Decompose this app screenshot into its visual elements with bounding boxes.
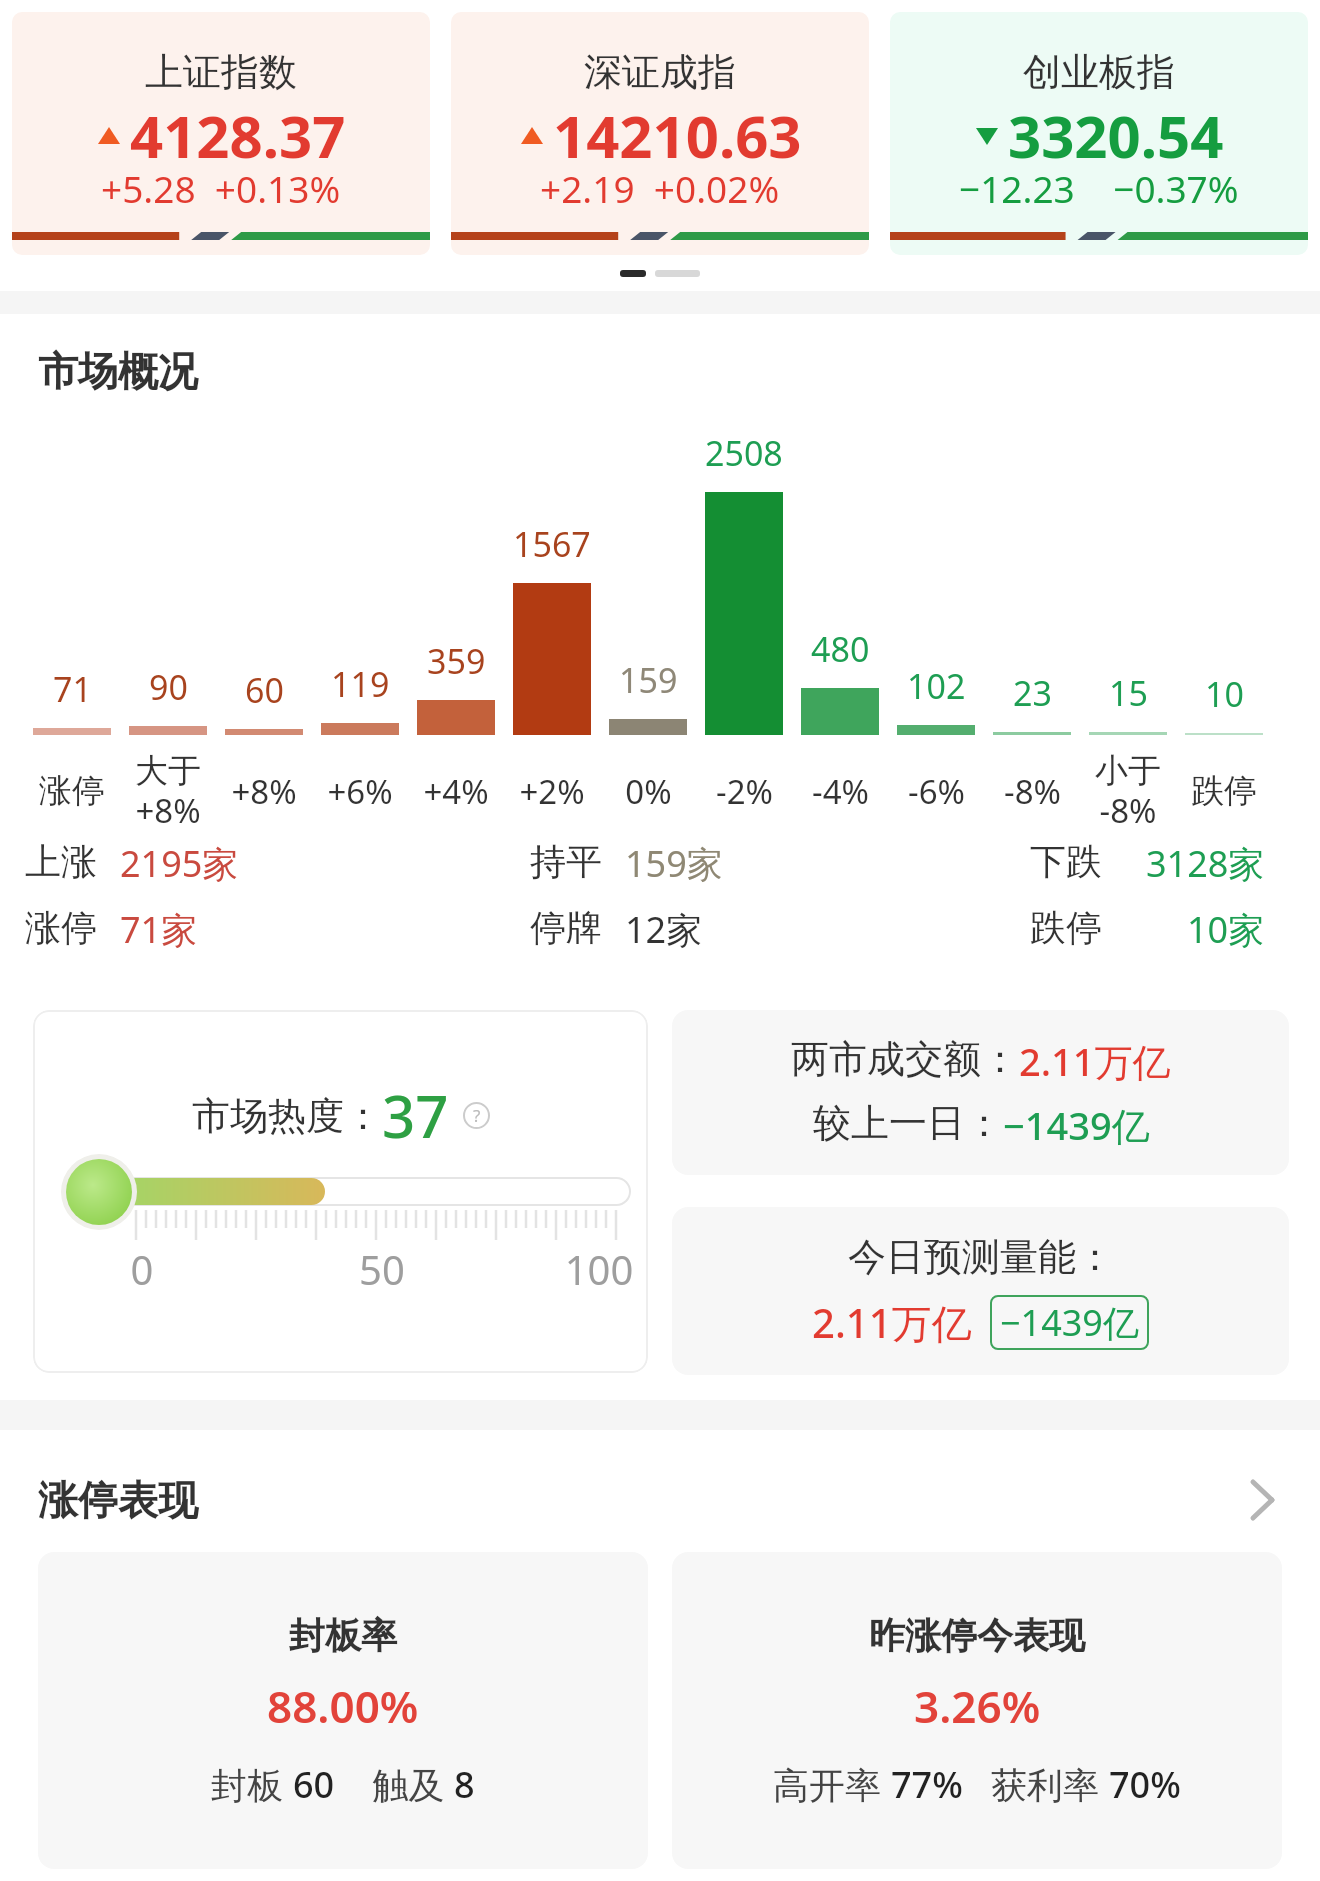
staticText: 3320.54 (1008, 96, 1224, 175)
staticText: 50 (352, 1242, 412, 1296)
staticText: 跌停 (1030, 905, 1102, 950)
staticText: 10 (1205, 671, 1244, 717)
staticText: +5.28 +0.13% (101, 163, 341, 213)
staticText: 23 (1013, 670, 1052, 716)
staticText: +6% (327, 769, 393, 814)
staticText: 2508 (705, 430, 783, 476)
staticText: −12.23 −0.37% (959, 163, 1239, 213)
button[interactable]: 创业板指 (890, 12, 1308, 255)
staticText: 封板 (211, 1760, 293, 1809)
staticText: 71 (53, 666, 92, 712)
staticText: 119 (331, 661, 390, 707)
staticText: ? (473, 1104, 481, 1127)
staticText: 0 (122, 1242, 162, 1296)
staticText: 70% (1109, 1760, 1181, 1809)
button[interactable]: 涨停表现 (0, 1475, 1320, 1525)
staticText: 市场热度： (192, 1092, 382, 1140)
staticText: 持平 (530, 839, 602, 884)
staticText: 涨停 (25, 905, 97, 950)
staticText: 359 (427, 638, 486, 684)
staticText: 15 (1109, 670, 1148, 716)
staticText: 71家 (120, 905, 198, 954)
staticText: +2.19 +0.02% (540, 163, 780, 213)
staticText: 涨停表现 (38, 1475, 198, 1525)
staticText: 102 (907, 663, 966, 709)
staticText: 触及 (335, 1760, 454, 1809)
button[interactable]: 昨涨停今表现 (672, 1552, 1282, 1869)
staticText: 3128家 (1146, 839, 1265, 888)
staticText: 创业板指 (1023, 48, 1175, 96)
button[interactable]: 两市成交额： (672, 1010, 1289, 1175)
staticText: −1439亿 (1000, 1298, 1139, 1347)
staticText: 停牌 (530, 905, 602, 950)
staticText: -6% (908, 769, 965, 814)
staticText: 37 (382, 1076, 449, 1155)
staticText: 市场概况 (38, 346, 198, 396)
staticText: 大于 +8% (135, 750, 201, 833)
staticText: 高开率 (773, 1760, 891, 1809)
staticText: 下跌 (1030, 839, 1102, 884)
staticText: 昨涨停今表现 (869, 1613, 1085, 1658)
staticText: 获利率 (963, 1760, 1109, 1809)
staticText: 深证成指 (584, 48, 736, 96)
staticText: 88.00% (267, 1676, 419, 1736)
button[interactable]: 深证成指 (451, 12, 869, 255)
staticText: 小于 -8% (1095, 750, 1161, 833)
staticText: 4128.37 (130, 96, 346, 175)
staticText: 2195家 (120, 839, 239, 888)
staticText: 159家 (625, 839, 723, 888)
button[interactable]: 封板率 (38, 1552, 648, 1869)
staticText: 10家 (1187, 905, 1265, 954)
staticText: 100 (554, 1242, 644, 1296)
button[interactable]: 今日预测量能： (672, 1207, 1289, 1375)
staticText: 2.11万亿 (812, 1295, 972, 1350)
staticText: 159 (619, 657, 678, 703)
staticText: 8 (454, 1760, 475, 1809)
staticText: 跌停 (1191, 770, 1257, 812)
staticText: 封板率 (289, 1613, 397, 1658)
staticText: +2% (519, 769, 585, 814)
staticText: +4% (423, 769, 489, 814)
staticText: 3.26% (914, 1676, 1041, 1736)
staticText: 1567 (513, 521, 591, 567)
staticText: 60 (245, 667, 284, 713)
staticText: 77% (891, 1760, 963, 1809)
staticText: 90 (149, 664, 188, 710)
staticText: −1439亿 (1003, 1099, 1150, 1151)
staticText: -8% (1004, 769, 1061, 814)
staticText: +8% (231, 769, 297, 814)
staticText: 涨停 (39, 770, 105, 812)
staticText: 480 (811, 626, 870, 672)
staticText: -2% (716, 769, 773, 814)
staticText: -4% (812, 769, 869, 814)
staticText: 较上一日： (813, 1099, 1003, 1147)
staticText: 今日预测量能： (848, 1233, 1114, 1281)
staticText: 上涨 (25, 839, 97, 884)
staticText: 0% (625, 769, 672, 814)
staticText: 2.11万亿 (1019, 1035, 1171, 1087)
staticText: 60 (293, 1760, 335, 1809)
staticText: 14210.63 (553, 96, 802, 175)
button[interactable]: 市场热度： (33, 1010, 648, 1373)
button[interactable]: 上证指数 (12, 12, 430, 255)
staticText: 上证指数 (145, 48, 297, 96)
staticText: 12家 (625, 905, 703, 954)
staticText: 两市成交额： (791, 1035, 1019, 1083)
